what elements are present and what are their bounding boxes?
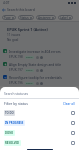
staticText: RESOLVED [5, 141, 20, 145]
button[interactable]: TO DO [0, 108, 79, 118]
button[interactable]: DONE [0, 128, 79, 138]
staticText: DONE [26, 69, 33, 72]
button[interactable]: Investigate increase in 404 errors [0, 47, 79, 60]
staticText: Search statuses [4, 91, 29, 95]
button[interactable]: Label [58, 15, 73, 20]
button[interactable]: Assignee [36, 15, 56, 20]
staticText: DONE [26, 56, 33, 59]
staticText: DONE [26, 82, 33, 85]
staticText: Assignee [38, 16, 51, 20]
button[interactable]: IN PROGRESS [0, 118, 79, 128]
staticText: EPUK-197 [9, 68, 23, 72]
staticText: Filter by status [4, 101, 28, 106]
staticText: Search this board [7, 7, 35, 12]
staticText: 4:07 [3, 1, 10, 5]
staticText: Status [20, 16, 29, 20]
button[interactable]: Type [2, 15, 16, 20]
staticText: DONE [5, 131, 14, 135]
staticText: IN PROGRESS [5, 121, 24, 125]
staticText: Reconfigure tooltip for credentials [9, 75, 62, 79]
staticText: EPUK-196 [9, 81, 23, 85]
button[interactable]: Align Empty State design and title [0, 60, 79, 73]
staticText: EPUK Sprint 1 (Active) [7, 27, 48, 32]
staticText: 11 issues [7, 33, 21, 37]
button[interactable]: Clear all [63, 102, 75, 106]
button[interactable]: Status [18, 15, 34, 20]
staticText: EPUK-198 [9, 55, 23, 59]
staticText: Label [60, 16, 68, 20]
staticText: Type [4, 16, 11, 20]
staticText: TO DO [5, 111, 14, 115]
staticText: Align Empty State design and title [9, 62, 62, 66]
button[interactable]: Back [0, 6, 7, 13]
staticText: No goal [7, 38, 19, 42]
staticText: Investigate increase in 404 errors [9, 49, 61, 53]
button[interactable]: Reconfigure tooltip for credentials [0, 73, 79, 86]
button[interactable]: RESOLVED [0, 138, 79, 148]
